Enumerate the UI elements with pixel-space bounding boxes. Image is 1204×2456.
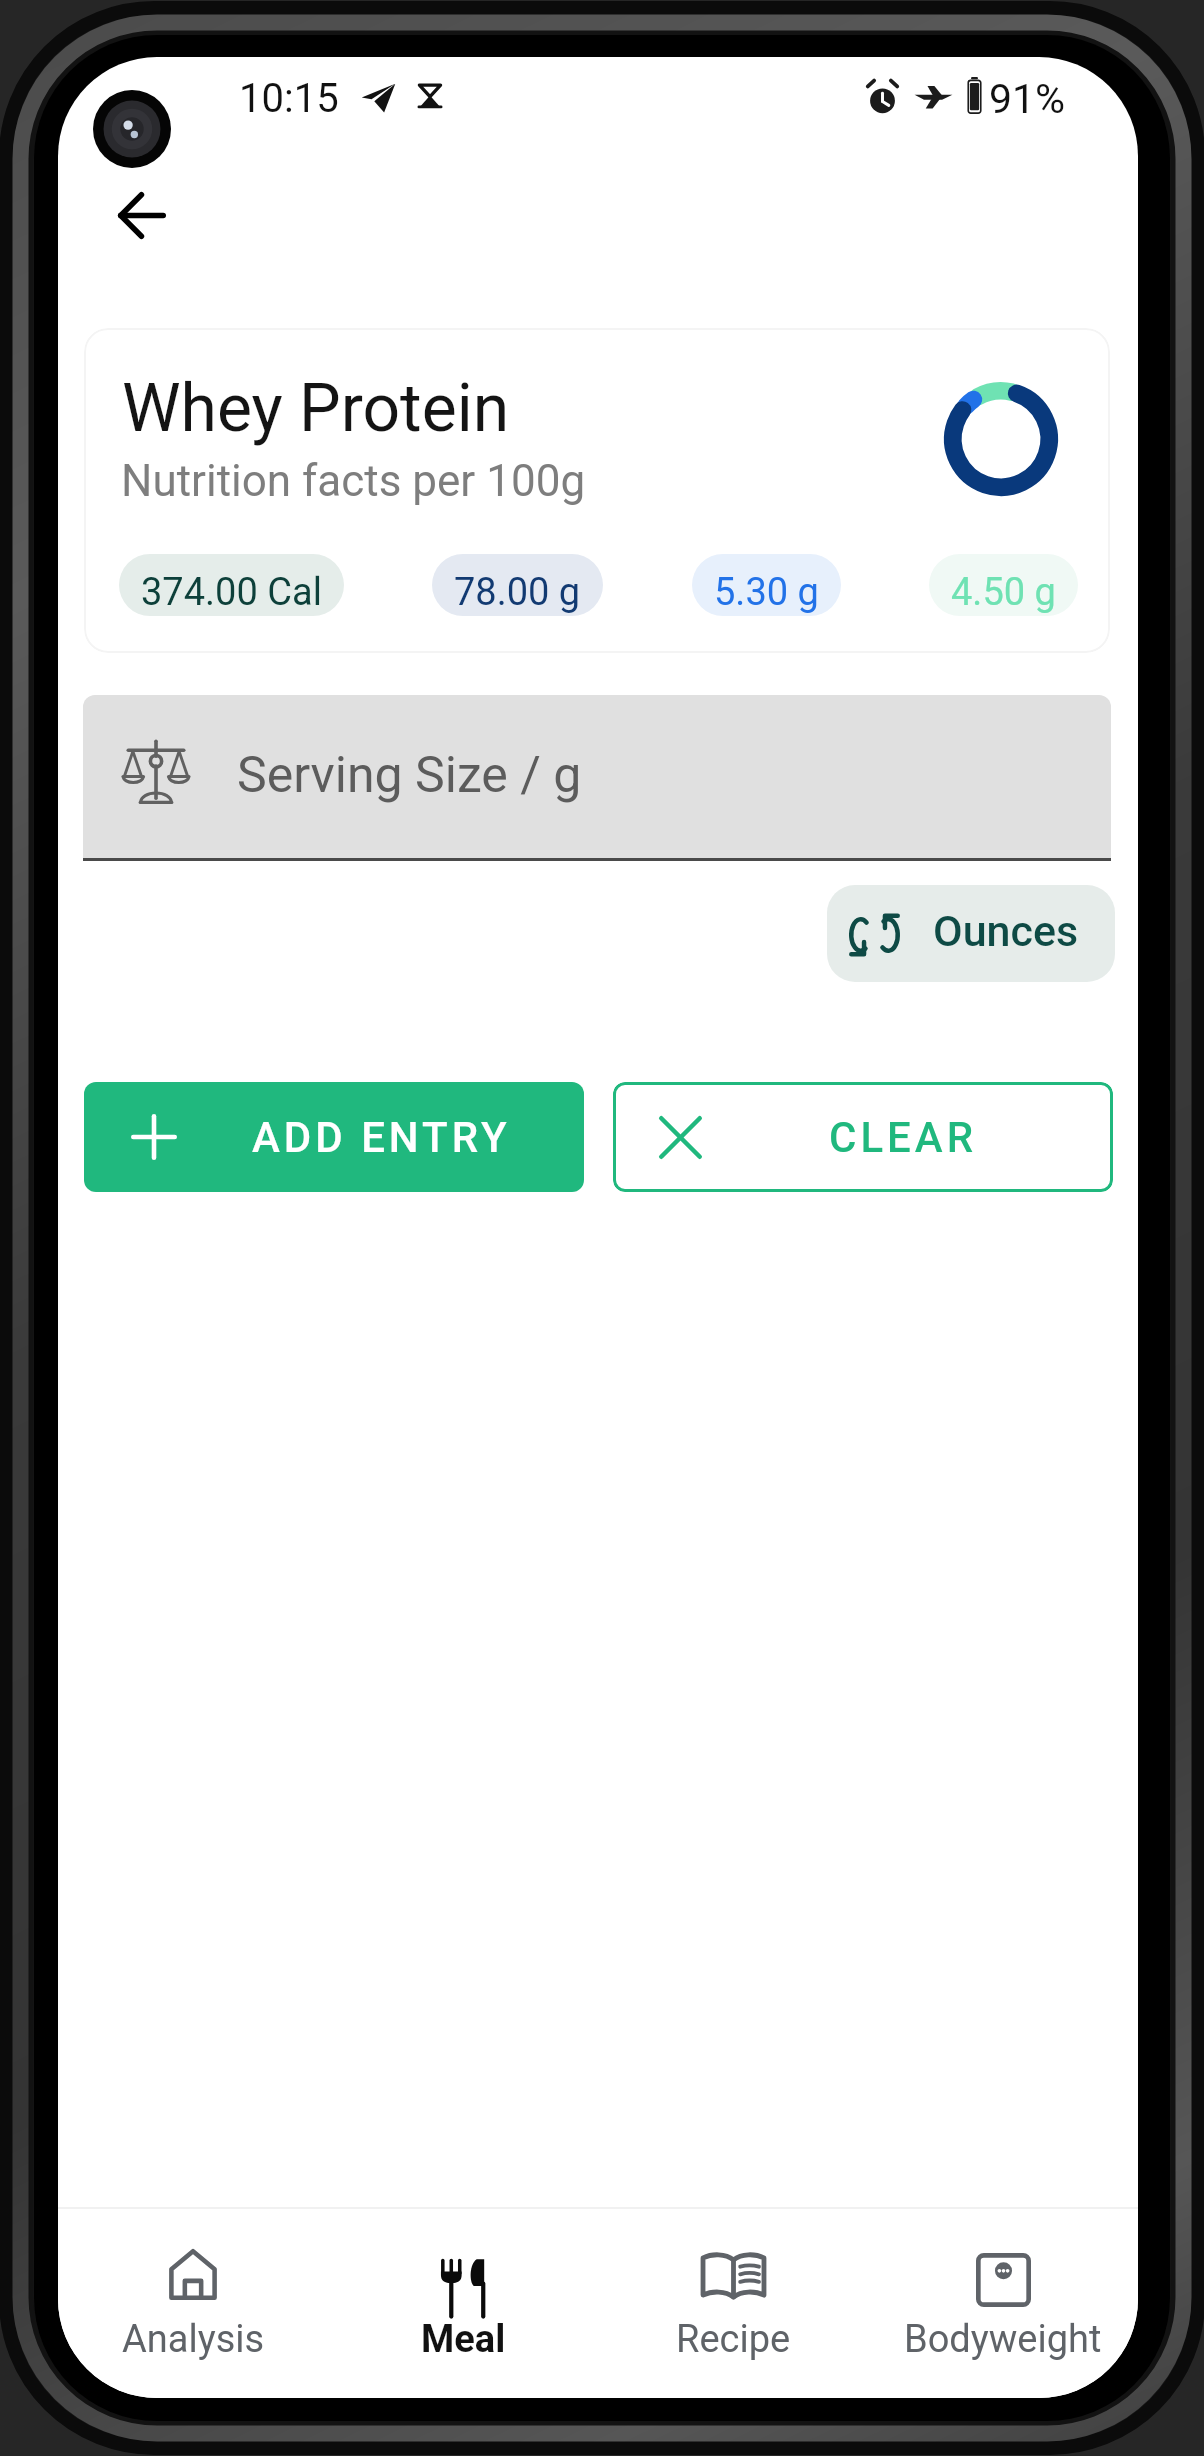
staticText: Whey Protein (122, 370, 510, 447)
staticText: CLEAR (829, 1113, 978, 1162)
button[interactable]: Bodyweight (868, 2209, 1138, 2398)
button[interactable]: Serving Size / g (83, 695, 1111, 858)
staticText: Bodyweight (904, 2317, 1102, 2362)
staticText: 10:15 (239, 75, 339, 122)
button[interactable]: Recipe (598, 2209, 868, 2398)
staticText: 78.00 g (454, 570, 581, 615)
button[interactable]: Analysis (58, 2209, 328, 2398)
button[interactable]: CLEAR (613, 1082, 1113, 1192)
button[interactable]: ADD ENTRY (84, 1082, 584, 1192)
staticText: 91% (989, 75, 1066, 123)
staticText: 374.00 Cal (141, 570, 322, 615)
staticText: Ounces (933, 906, 1079, 956)
staticText: ADD ENTRY (252, 1113, 511, 1162)
staticText: 5.30 g (714, 570, 819, 615)
button[interactable]: Meal (328, 2209, 598, 2398)
staticText: Recipe (676, 2317, 791, 2362)
staticText: 4.50 g (951, 570, 1056, 615)
button[interactable]: Ounces (827, 885, 1115, 982)
staticText: Meal (421, 2317, 506, 2362)
button[interactable]: Whey Protein (84, 328, 1110, 653)
staticText: Serving Size / g (237, 746, 582, 805)
staticText: Nutrition facts per 100g (121, 455, 586, 507)
staticText: Analysis (122, 2317, 265, 2362)
button[interactable]: Back (94, 167, 190, 263)
